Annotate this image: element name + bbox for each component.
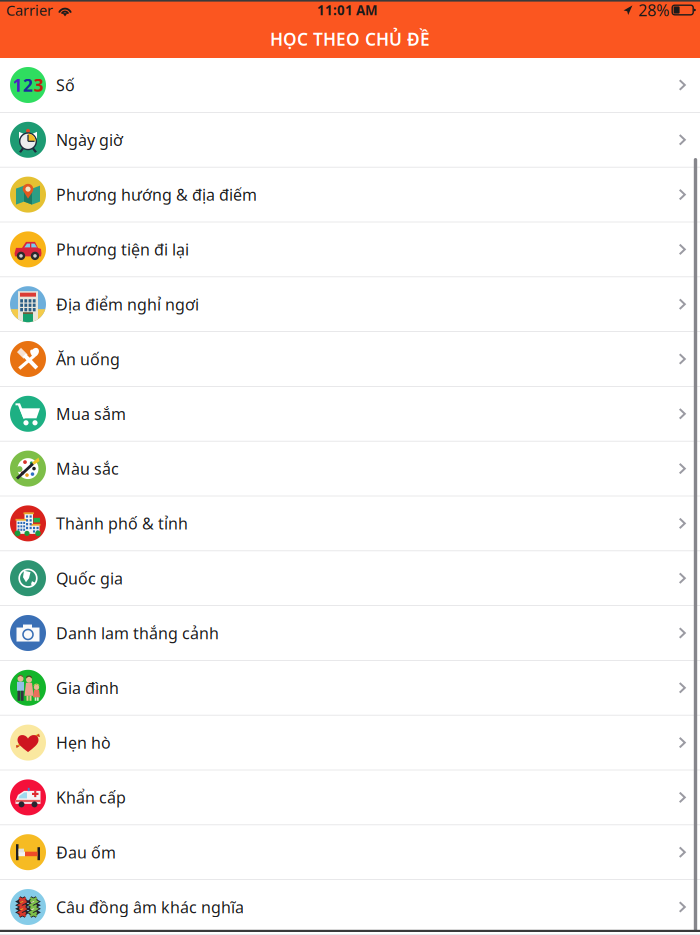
staticText: Quốc gia [56,568,123,589]
button[interactable]: Câu đồng âm khác nghĩa [0,880,700,935]
staticText: Danh lam thắng cảnh [56,622,219,644]
staticText: Màu sắc [56,458,119,479]
button[interactable]: Danh lam thắng cảnh [0,606,700,661]
staticText: 2 [23,73,33,96]
button[interactable]: Mua sắm [0,387,700,442]
button[interactable]: Đau ốm [0,825,700,880]
staticText: Hẹn hò [56,732,111,753]
staticText: Đau ốm [56,842,116,863]
staticText: Câu đồng âm khác nghĩa [56,896,244,918]
button[interactable]: Màu sắc [0,442,700,496]
staticText: Carrier [6,0,53,20]
button[interactable]: Hẹn hò [0,716,700,770]
button[interactable]: Ăn uống [0,332,700,387]
staticText: Số [56,74,75,96]
staticText: Gia đình [56,677,119,698]
button[interactable]: Phương hướng & địa điểm [0,168,700,222]
staticText: 3 [33,73,43,96]
staticText: Ăn uống [56,348,120,370]
staticText: Ngày giờ [56,129,123,150]
button[interactable]: Quốc gia [0,551,700,606]
staticText: HỌC THEO CHỦ ĐỀ [270,27,430,50]
staticText: Phương hướng & địa điểm [56,184,257,205]
button[interactable]: 1 [0,58,700,113]
staticText: Địa điểm nghỉ ngơi [56,294,199,315]
button[interactable]: Phương tiện đi lại [0,222,700,277]
staticText: 1 [12,73,22,96]
staticText: Thành phố & tỉnh [56,513,188,534]
button[interactable]: Ngày giờ [0,113,700,168]
button[interactable]: Thành phố & tỉnh [0,496,700,551]
staticText: 28% [638,0,669,21]
staticText: Phương tiện đi lại [56,239,189,260]
button[interactable]: Khẩn cấp [0,770,700,825]
button[interactable]: Địa điểm nghỉ ngơi [0,277,700,332]
button[interactable]: Gia đình [0,661,700,716]
staticText: Mua sắm [56,403,126,424]
staticText: Khẩn cấp [56,787,126,808]
staticText: 11:01 AM [317,1,378,19]
